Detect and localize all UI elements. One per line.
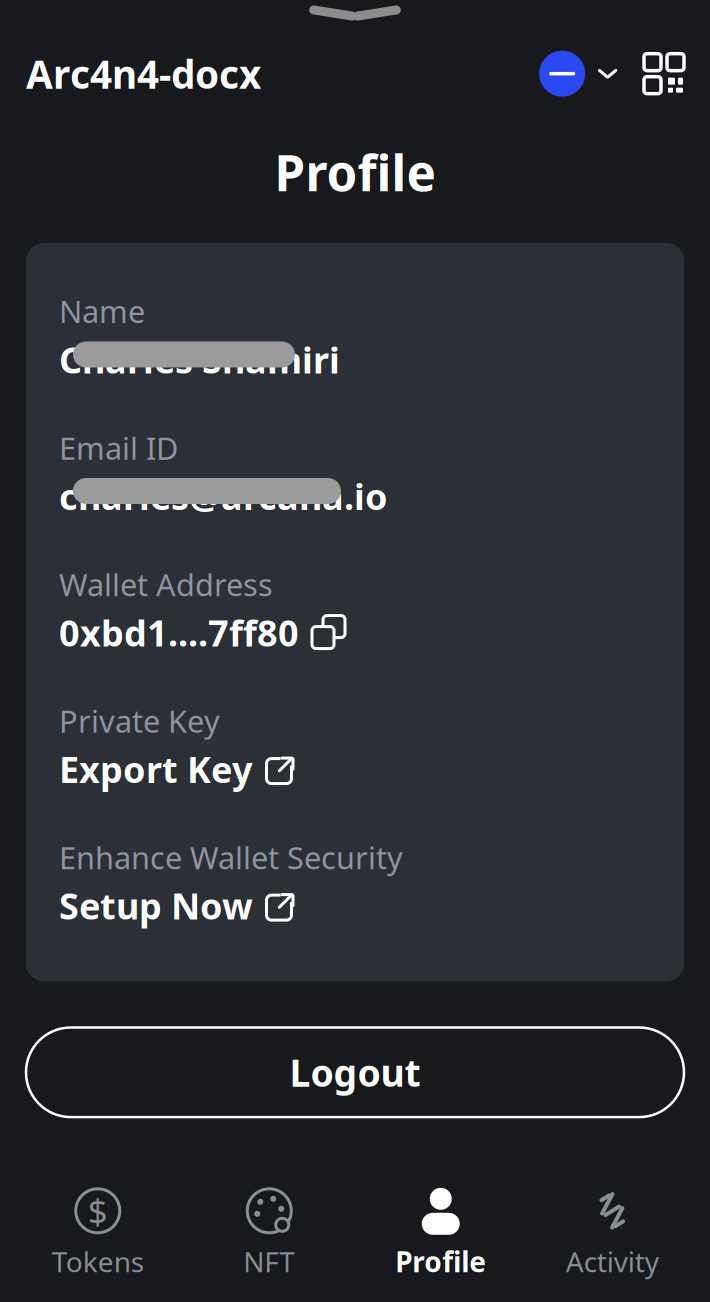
staticText: Name [59,291,145,332]
staticText: $ [88,1188,108,1234]
button[interactable]: Copy wallet address [311,615,345,649]
button[interactable]: Setup wallet security [265,890,297,922]
staticText: Export Key [59,745,253,793]
button[interactable]: Scan QR code [618,54,684,94]
staticText: Email ID [59,427,178,468]
staticText: Arc4n4-docx [26,48,261,99]
button[interactable]: $ [12,1181,183,1286]
staticText: NFT [243,1243,295,1280]
staticText: Setup Now [59,882,253,929]
staticText: Enhance Wallet Security [59,837,403,878]
button[interactable]: Switch account [539,51,618,97]
button[interactable]: Logout [26,1027,684,1117]
staticText: Profile [395,1243,486,1280]
staticText: Tokens [52,1243,144,1280]
staticText: 0xbd1....7ff80 [59,609,299,656]
button[interactable]: NFT [183,1181,355,1286]
button[interactable]: Activity [526,1181,698,1286]
staticText: Private Key [59,700,220,741]
button[interactable]: Export private key [265,753,297,785]
staticText: Charles Shamiri [59,336,340,383]
staticText: Wallet Address [59,564,273,605]
staticText: Profile [274,139,435,205]
staticText: charles@arcana.io [59,472,388,520]
staticText: Logout [289,1047,420,1097]
staticText: Activity [566,1243,659,1280]
button[interactable]: Profile [355,1181,526,1286]
